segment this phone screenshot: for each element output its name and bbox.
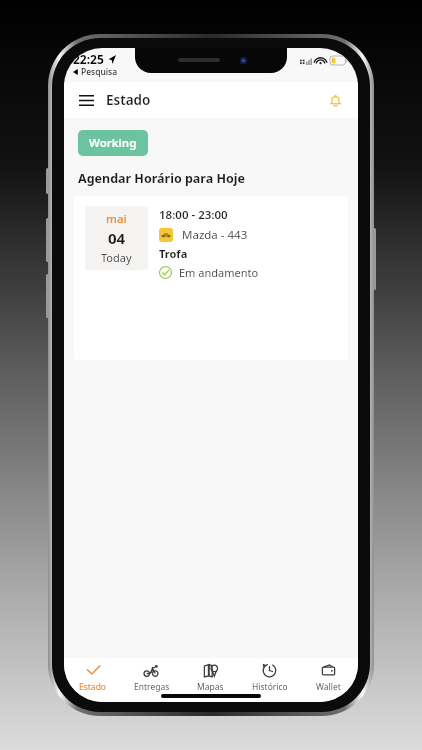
staticText: Estado xyxy=(106,91,151,109)
button[interactable]: Estado xyxy=(64,662,122,702)
staticText: Estado xyxy=(79,681,107,693)
staticText: mai xyxy=(106,211,127,227)
staticText: Histórico xyxy=(252,681,288,693)
staticText: Today xyxy=(101,250,132,265)
staticText: Trofa xyxy=(159,246,188,261)
staticText: Working xyxy=(89,135,137,151)
staticText: Pesquisa xyxy=(81,66,118,78)
staticText: Mapas xyxy=(197,681,224,693)
staticText: Entregas xyxy=(134,681,170,693)
staticText: 04 xyxy=(108,228,126,248)
button[interactable]: Wallet xyxy=(299,662,358,702)
button[interactable]: mai xyxy=(74,196,348,360)
staticText: Mazda - 443 xyxy=(182,227,248,243)
staticText: Wallet xyxy=(316,681,341,693)
staticText: Em andamento xyxy=(179,265,259,280)
button[interactable]: Menu xyxy=(76,92,97,109)
button[interactable]: Mapas xyxy=(181,662,240,702)
button[interactable]: Notifications xyxy=(327,91,344,110)
button[interactable]: Histórico xyxy=(240,662,299,702)
staticText: 22:25 xyxy=(73,51,104,67)
button[interactable]: Working xyxy=(78,130,148,156)
staticText: Agendar Horário para Hoje xyxy=(78,170,245,187)
staticText: 18:00 - 23:00 xyxy=(159,207,228,223)
button[interactable]: Entregas xyxy=(122,662,181,702)
